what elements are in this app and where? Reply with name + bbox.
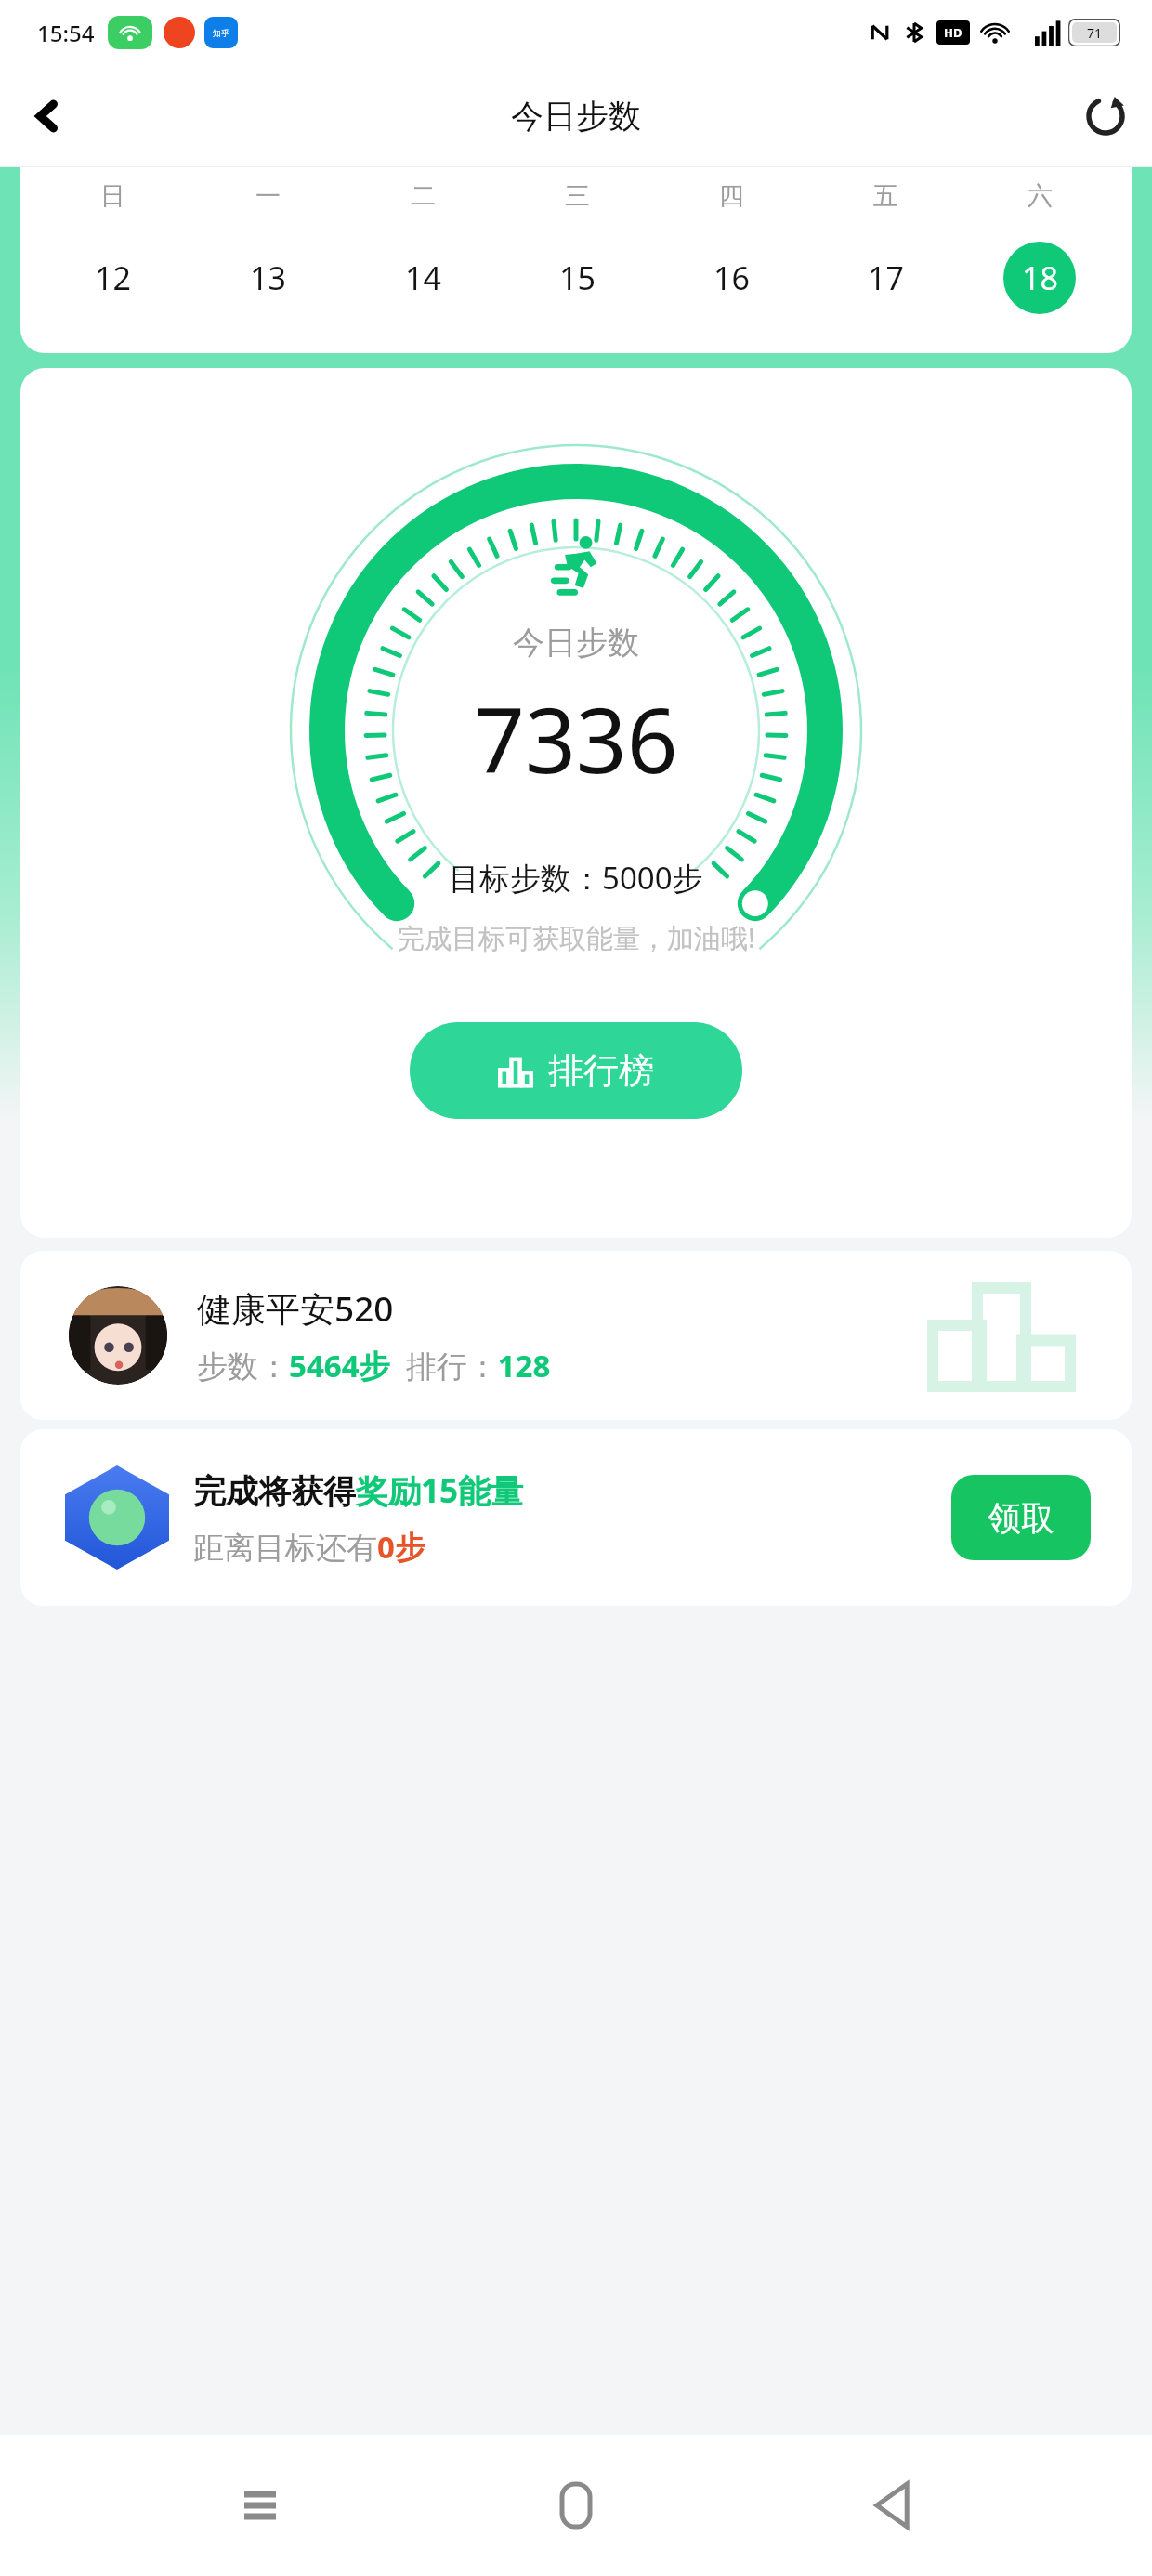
staticText: 一 [255, 180, 281, 212]
staticText: 三 [565, 180, 590, 212]
staticText: 7336 [474, 677, 678, 799]
staticText: 16 [713, 256, 750, 299]
staticText: 排行榜 [548, 1048, 654, 1093]
button[interactable]: Refresh [1059, 70, 1152, 163]
staticText: 健康平安520 [197, 1284, 394, 1332]
staticText: 今日步数 [511, 96, 641, 137]
button[interactable]: 12 [35, 242, 190, 314]
staticText: 二 [411, 180, 436, 212]
button[interactable]: 15 [500, 242, 654, 314]
staticText: 六 [1028, 180, 1053, 212]
button[interactable]: 18 [962, 242, 1117, 314]
staticText: 12 [95, 256, 131, 299]
button[interactable]: 16 [654, 242, 808, 314]
staticText: 完成将获得奖励15能量 [193, 1468, 524, 1513]
staticText: 四 [719, 180, 744, 212]
button[interactable]: Back [836, 2450, 948, 2561]
staticText: 知乎 [213, 28, 229, 38]
button[interactable]: 健康平安520 [20, 1251, 1132, 1420]
button[interactable]: 17 [808, 242, 962, 314]
staticText: HD [944, 24, 962, 41]
staticText: 五 [873, 180, 898, 212]
button[interactable]: Back [0, 70, 93, 163]
staticText: 71 [1087, 24, 1103, 42]
staticText: 17 [868, 256, 904, 299]
staticText: 领取 [988, 1497, 1054, 1539]
staticText: 15 [559, 256, 596, 299]
staticText: 完成目标可获取能量，加油哦! [398, 919, 755, 956]
button[interactable]: 排行榜 [410, 1022, 742, 1119]
button[interactable]: 13 [190, 242, 346, 314]
button[interactable]: Home [520, 2450, 632, 2561]
button[interactable]: 领取 [951, 1475, 1091, 1560]
staticText: 14 [405, 256, 441, 299]
button[interactable]: Recents [204, 2450, 316, 2561]
staticText: 13 [250, 256, 286, 299]
button[interactable]: 14 [346, 242, 500, 314]
staticText: 距离目标还有0步 [193, 1526, 425, 1568]
staticText: 步数：5464步 排行：128 [197, 1345, 551, 1387]
staticText: 18 [1022, 256, 1058, 299]
staticText: 目标步数：5000步 [449, 857, 703, 899]
staticText: 15:54 [37, 18, 95, 48]
staticText: 今日步数 [513, 623, 639, 663]
staticText: 日 [100, 180, 125, 212]
